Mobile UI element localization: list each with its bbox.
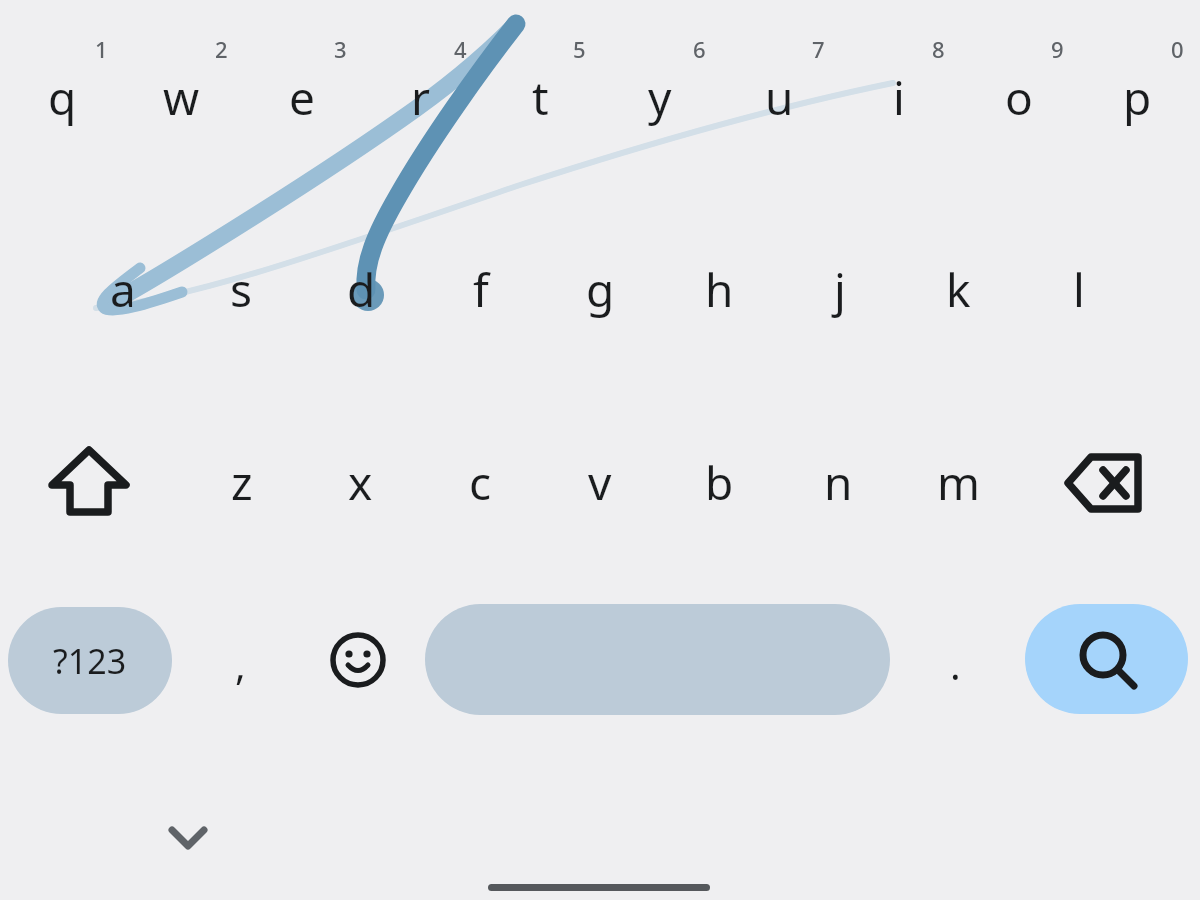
staticText: . <box>950 637 961 691</box>
staticText: t <box>532 66 549 129</box>
button[interactable]: l <box>1019 214 1138 364</box>
button[interactable]: . <box>900 609 1010 719</box>
button[interactable]: r <box>361 22 480 172</box>
staticText: 3 <box>334 34 347 64</box>
button[interactable]: y <box>600 22 719 172</box>
button[interactable]: u <box>720 22 839 172</box>
button[interactable]: , <box>185 609 295 719</box>
staticText: f <box>473 258 489 321</box>
staticText: 4 <box>454 34 467 64</box>
staticText: u <box>765 66 794 129</box>
button[interactable]: v <box>540 407 659 557</box>
staticText: h <box>705 258 734 321</box>
staticText: 2 <box>215 34 228 64</box>
button[interactable]: t <box>481 22 600 172</box>
staticText: v <box>588 451 612 514</box>
button[interactable]: s <box>182 214 301 364</box>
staticText: q <box>48 66 77 129</box>
staticText: j <box>834 258 846 321</box>
staticText: b <box>705 451 734 514</box>
staticText: y <box>648 66 672 129</box>
button[interactable]: g <box>541 214 660 364</box>
button[interactable]: j <box>780 214 899 364</box>
staticText: 0 <box>1171 34 1184 64</box>
button[interactable]: q <box>3 22 122 172</box>
button[interactable]: Emoji <box>303 605 413 715</box>
staticText: 1 <box>95 34 108 64</box>
staticText: x <box>348 451 373 514</box>
staticText: 8 <box>932 34 945 64</box>
staticText: s <box>230 258 253 321</box>
button[interactable]: c <box>421 407 540 557</box>
staticText: r <box>411 66 430 129</box>
staticText: ?123 <box>53 638 127 684</box>
staticText: l <box>1073 258 1085 321</box>
button[interactable]: f <box>421 214 540 364</box>
staticText: g <box>586 258 615 321</box>
button[interactable]: m <box>899 407 1018 557</box>
staticText: i <box>893 66 905 129</box>
button[interactable]: Shift <box>14 406 164 556</box>
staticText: o <box>1005 66 1033 129</box>
staticText: 7 <box>812 34 825 64</box>
button[interactable]: p <box>1078 22 1197 172</box>
button[interactable]: Space <box>425 604 890 715</box>
staticText: w <box>163 66 200 129</box>
staticText: c <box>469 451 492 514</box>
button[interactable]: z <box>182 407 301 557</box>
button[interactable]: n <box>779 407 898 557</box>
button[interactable]: w <box>122 22 241 172</box>
staticText: 6 <box>693 34 706 64</box>
button[interactable]: b <box>660 407 779 557</box>
staticText: 9 <box>1051 34 1064 64</box>
button[interactable]: Backspace <box>1030 408 1180 558</box>
button[interactable]: Hide keyboard <box>133 787 243 887</box>
staticText: m <box>937 451 981 514</box>
staticText: d <box>347 258 376 321</box>
button[interactable]: Search <box>1025 604 1188 714</box>
staticText: 5 <box>573 34 586 64</box>
staticText: e <box>289 66 315 129</box>
button[interactable]: d <box>302 214 421 364</box>
button[interactable]: o <box>959 22 1078 172</box>
button[interactable]: a <box>63 214 182 364</box>
button[interactable]: k <box>899 214 1018 364</box>
button[interactable]: e <box>242 22 361 172</box>
button[interactable]: x <box>301 407 420 557</box>
staticText: , <box>235 637 246 691</box>
button[interactable]: h <box>660 214 779 364</box>
staticText: a <box>110 258 136 321</box>
staticText: p <box>1123 66 1152 129</box>
staticText: n <box>824 451 853 514</box>
button[interactable]: ?123 <box>8 607 172 714</box>
staticText: z <box>231 451 253 514</box>
button[interactable]: i <box>839 22 958 172</box>
staticText: k <box>946 258 971 321</box>
